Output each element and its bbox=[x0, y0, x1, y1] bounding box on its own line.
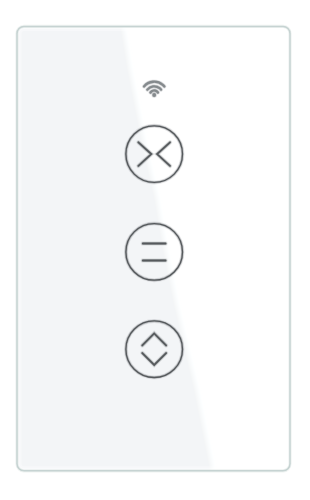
button[interactable]: Close curtain bbox=[124, 124, 185, 185]
button[interactable]: Open curtain bbox=[124, 319, 185, 380]
button[interactable]: Wi-Fi status bbox=[140, 74, 168, 102]
button[interactable]: Stop curtain bbox=[124, 222, 185, 283]
